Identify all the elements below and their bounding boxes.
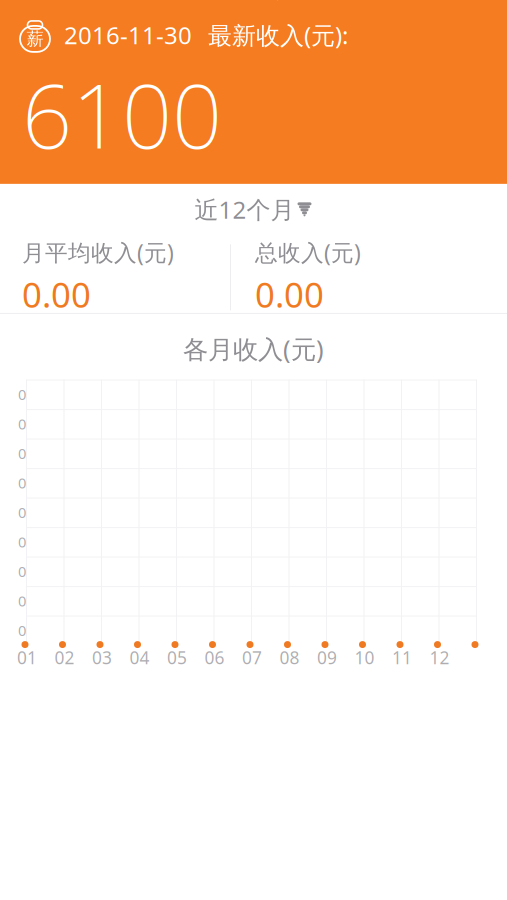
staticText: 0 <box>18 444 26 463</box>
staticText: 04 <box>129 646 149 669</box>
staticText: 0 <box>18 591 26 611</box>
staticText: 0 <box>18 473 26 493</box>
staticText: 薪 <box>26 28 43 50</box>
staticText: 0 <box>18 562 26 581</box>
staticText: 0 <box>18 503 26 522</box>
staticText: 0.00 <box>22 271 91 317</box>
staticText: 各月收入(元) <box>183 332 324 365</box>
staticText: 近12个月 <box>194 193 294 225</box>
staticText: 08 <box>279 646 299 669</box>
staticText: 05 <box>167 646 187 669</box>
staticText: 06 <box>204 646 224 669</box>
staticText: 2016-11-30 <box>64 19 192 51</box>
staticText: 6100 <box>22 56 222 173</box>
staticText: 最新收入(元): <box>208 19 348 51</box>
staticText: 总收入(元) <box>255 237 361 267</box>
staticText: 月平均收入(元) <box>22 237 174 267</box>
staticText: 0 <box>18 532 26 552</box>
staticText: 03 <box>92 646 112 669</box>
button[interactable]: 近12个月 <box>194 189 312 229</box>
staticText: 0 <box>18 621 26 640</box>
staticText: 10 <box>354 646 374 669</box>
staticText: 01 <box>17 646 37 669</box>
staticText: 11 <box>392 646 412 669</box>
staticText: 0 <box>18 385 26 404</box>
staticText: 0.00 <box>255 271 324 317</box>
staticText: 0 <box>18 414 26 434</box>
staticText: 07 <box>242 646 262 669</box>
staticText: 09 <box>317 646 337 669</box>
staticText: 12 <box>429 646 449 669</box>
staticText: 02 <box>54 646 74 669</box>
